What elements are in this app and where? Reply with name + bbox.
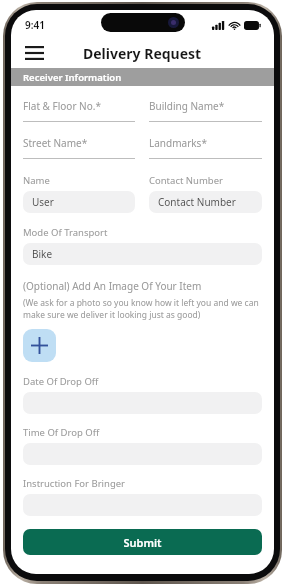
button[interactable]: Mode Of Transport [23,226,262,265]
button[interactable]: Add an image of your item [23,329,56,362]
staticText: Date Of Drop Off [23,375,99,388]
button[interactable]: Open navigation menu [19,38,49,68]
staticText: Contact Number [158,195,236,209]
button[interactable]: Landmarks* [149,136,262,159]
staticText: Landmarks* [149,136,207,150]
staticText: Delivery Request [83,44,202,63]
staticText: (We ask for a photo so you know how it l… [23,297,262,321]
button[interactable]: Submit [23,529,262,555]
staticText: Name [23,174,50,187]
staticText: Time Of Drop Off [23,426,100,439]
staticText: Street Name* [23,136,88,150]
button[interactable]: Name [23,174,135,213]
button[interactable]: Contact Number [149,174,262,213]
button[interactable]: Time Of Drop Off [23,426,262,465]
staticText: User [32,195,54,209]
staticText: Submit [123,535,162,550]
staticText: Bike [32,247,53,261]
staticText: Mode Of Transport [23,226,108,239]
button[interactable]: Street Name* [23,136,135,159]
button[interactable]: Building Name* [149,99,262,122]
staticText: 9:41 [25,18,45,32]
button[interactable]: Flat & Floor No.* [23,99,135,122]
staticText: Contact Number [149,174,223,187]
button[interactable]: Date Of Drop Off [23,375,262,414]
button[interactable]: Instruction For Bringer [23,477,262,516]
staticText: (Optional) Add An Image Of Your Item [23,279,202,293]
staticText: Receiver Information [23,71,122,84]
staticText: Instruction For Bringer [23,477,126,490]
staticText: Flat & Floor No.* [23,99,101,113]
staticText: Building Name* [149,99,225,113]
